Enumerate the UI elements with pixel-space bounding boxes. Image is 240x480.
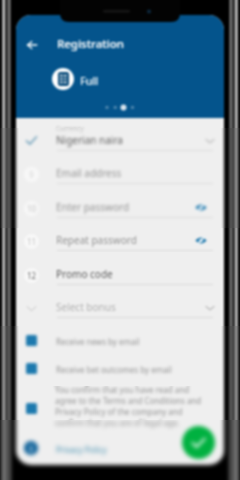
staticText: Full: [80, 73, 99, 88]
staticText: Select bonus: [56, 300, 116, 314]
staticText: You confirm that you have read and agree…: [55, 386, 205, 420]
button[interactable]: Submit registration: [182, 426, 215, 459]
button[interactable]: 10: [22, 196, 222, 221]
staticText: Currency: [56, 128, 84, 133]
staticText: 9: [29, 169, 34, 180]
staticText: Email address: [56, 166, 122, 180]
button[interactable]: 9: [22, 160, 222, 187]
staticText: 11: [27, 236, 37, 247]
button[interactable]: You confirm that you have read and agree…: [24, 420, 216, 432]
button[interactable]: Show password: [193, 199, 209, 215]
staticText: Promo code: [56, 267, 113, 281]
staticText: Registration: [57, 36, 125, 52]
button[interactable]: 12: [22, 260, 222, 288]
button[interactable]: 11: [22, 228, 222, 252]
button[interactable]: Back: [18, 31, 46, 59]
staticText: Privacy Policy: [56, 444, 107, 455]
staticText: 12: [27, 270, 37, 281]
button[interactable]: Full: [52, 68, 114, 90]
staticText: Enter password: [56, 200, 130, 214]
staticText: Receive bet outcomes by email: [56, 364, 172, 375]
staticText: You confirm that you have read and agree…: [55, 420, 205, 428]
button[interactable]: Receive bet outcomes by email: [24, 356, 216, 380]
staticText: 10: [27, 203, 37, 214]
staticText: Repeat password: [56, 233, 137, 247]
staticText: Receive news by email: [56, 336, 140, 347]
staticText: Currency: [56, 124, 84, 128]
button[interactable]: Currency: [22, 128, 222, 154]
staticText: i: [30, 443, 33, 454]
button[interactable]: You confirm that you have read and agree…: [24, 386, 216, 420]
button[interactable]: Show password: [193, 232, 209, 248]
button[interactable]: Select bonus: [22, 293, 222, 321]
button[interactable]: Currency: [22, 126, 222, 128]
button[interactable]: i: [24, 436, 134, 460]
button[interactable]: Receive news by email: [24, 328, 216, 352]
staticText: Nigerian naira: [56, 133, 123, 147]
